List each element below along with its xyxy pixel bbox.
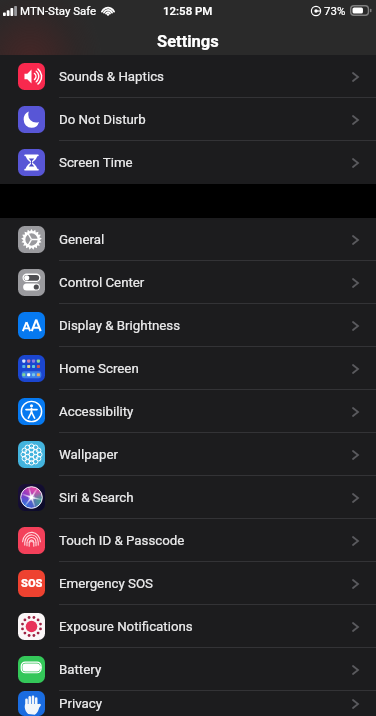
staticText: Settings xyxy=(157,32,219,51)
button[interactable]: General xyxy=(0,218,376,261)
staticText: SOS xyxy=(21,577,43,590)
staticText: Siri & Search xyxy=(59,490,134,506)
staticText: Control Center xyxy=(59,275,145,291)
button[interactable]: Wallpaper xyxy=(0,433,376,476)
button[interactable]: Display & Brightness xyxy=(0,304,376,347)
staticText: Battery xyxy=(59,662,102,678)
staticText: MTN-Stay Safe xyxy=(20,4,97,17)
button[interactable]: Accessibility xyxy=(0,390,376,433)
staticText: Display & Brightness xyxy=(59,318,181,334)
button[interactable]: Battery xyxy=(0,648,376,691)
button[interactable]: Control Center xyxy=(0,261,376,304)
staticText: General xyxy=(59,232,105,248)
button[interactable]: SOS xyxy=(0,562,376,605)
staticText: Home Screen xyxy=(59,361,139,377)
button[interactable]: Do Not Disturb xyxy=(0,98,376,141)
staticText: 73% xyxy=(324,4,346,17)
staticText: Screen Time xyxy=(59,155,133,171)
staticText: Wallpaper xyxy=(59,447,119,463)
staticText: Exposure Notifications xyxy=(59,619,193,635)
staticText: Sounds & Haptics xyxy=(59,69,164,85)
staticText: 12:58 PM xyxy=(163,4,213,17)
button[interactable]: Touch ID & Passcode xyxy=(0,519,376,562)
staticText: Touch ID & Passcode xyxy=(59,533,185,549)
button[interactable]: Screen Time xyxy=(0,141,376,184)
staticText: Emergency SOS xyxy=(59,576,154,592)
button[interactable]: Privacy xyxy=(0,691,376,716)
button[interactable]: Exposure Notifications xyxy=(0,605,376,648)
staticText: Privacy xyxy=(59,696,102,712)
button[interactable]: Sounds & Haptics xyxy=(0,55,376,98)
button[interactable]: Siri & Search xyxy=(0,476,376,519)
button[interactable]: Home Screen xyxy=(0,347,376,390)
staticText: Accessibility xyxy=(59,404,134,420)
staticText: Do Not Disturb xyxy=(59,112,146,128)
